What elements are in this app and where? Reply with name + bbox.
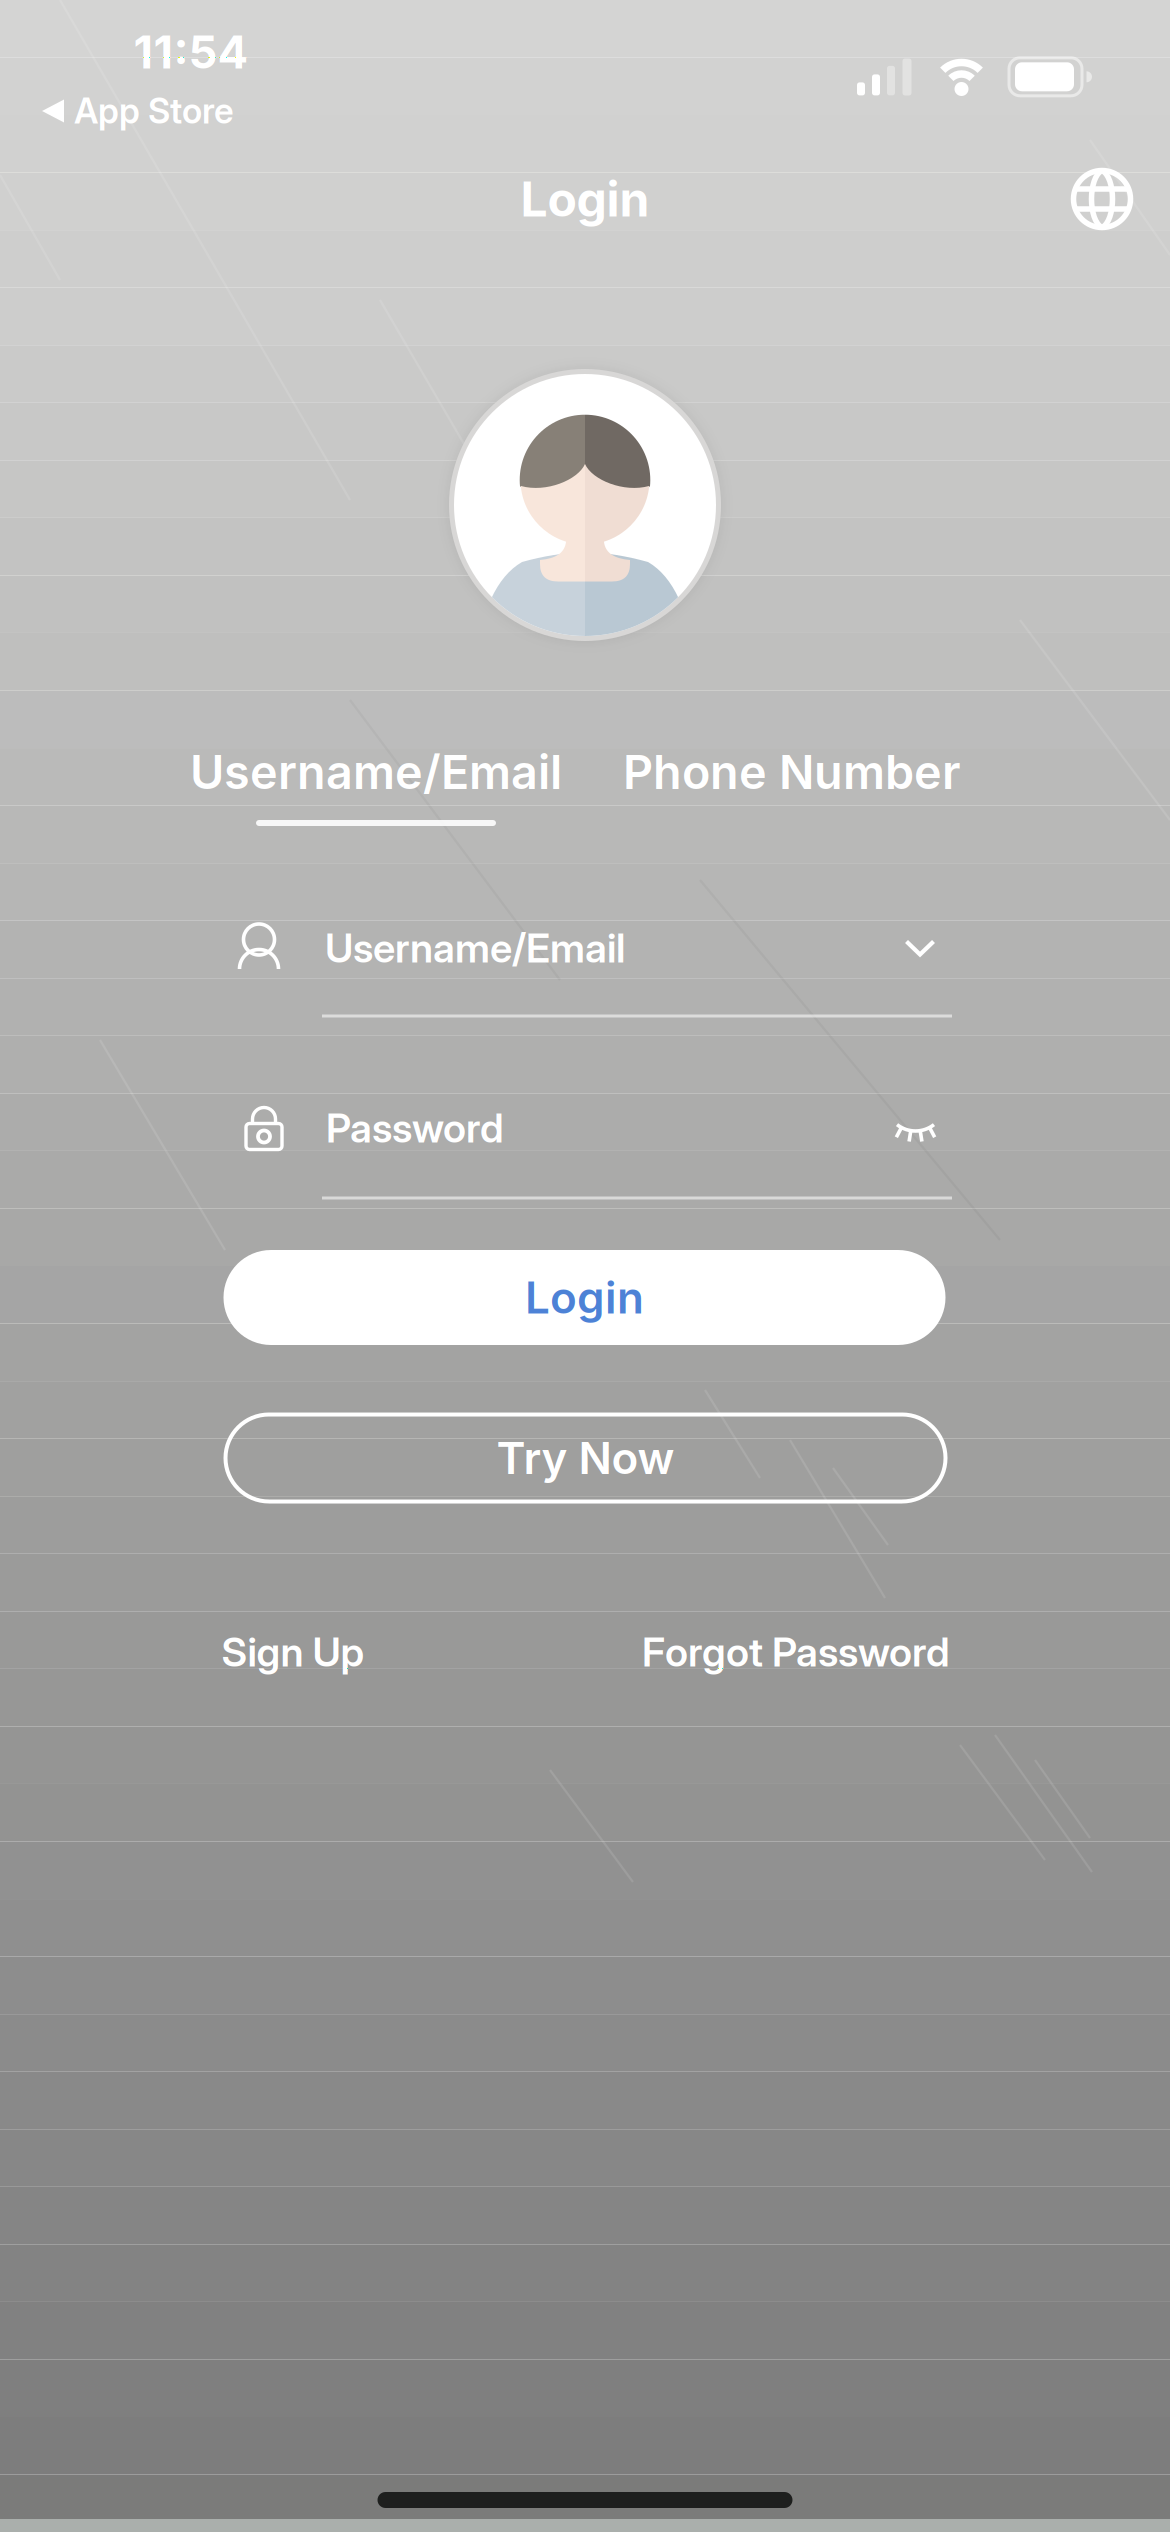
staticText: Login xyxy=(520,171,649,227)
staticText: Sign Up xyxy=(221,1628,364,1676)
staticText: App Store xyxy=(74,91,234,131)
staticText: Login xyxy=(525,1271,644,1323)
staticText: Username/Email xyxy=(325,924,625,972)
button[interactable]: Username/Email xyxy=(190,744,562,800)
button[interactable] xyxy=(893,1115,937,1145)
button[interactable]: Sign Up xyxy=(221,1628,364,1676)
button[interactable]: Try Now xyxy=(223,1412,947,1503)
button[interactable] xyxy=(904,939,935,956)
staticText: Try Now xyxy=(496,1432,674,1484)
staticText: Forgot Password xyxy=(642,1628,950,1676)
button[interactable]: Login xyxy=(223,1250,945,1345)
staticText: Phone Number xyxy=(623,744,961,800)
staticText: Password xyxy=(326,1104,504,1152)
staticText: 11:54 xyxy=(133,25,248,79)
staticText: Username/Email xyxy=(190,744,562,800)
button[interactable] xyxy=(1071,168,1133,230)
button[interactable]: Phone Number xyxy=(623,744,961,800)
button[interactable]: Forgot Password xyxy=(642,1628,950,1676)
button[interactable]: App Store xyxy=(42,91,234,131)
